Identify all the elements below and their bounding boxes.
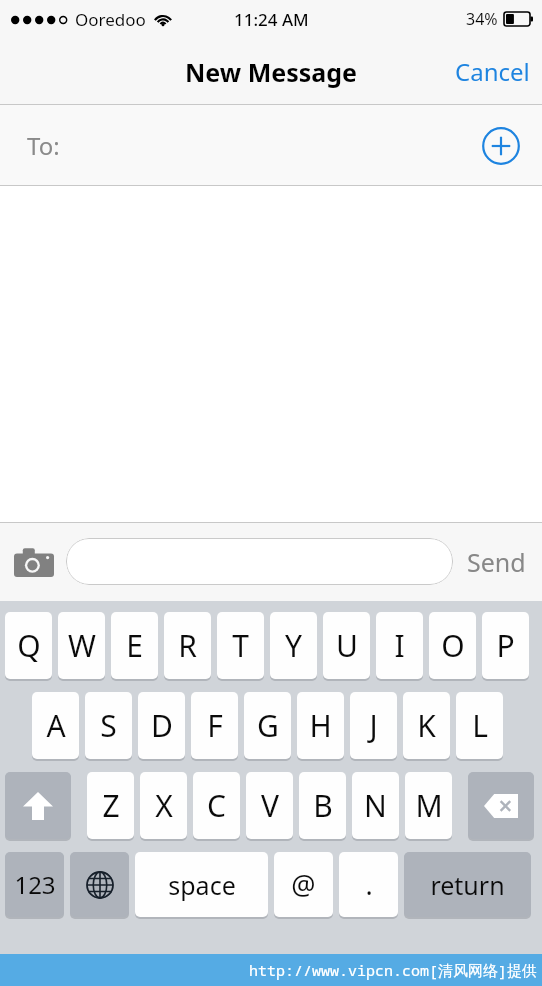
button[interactable]: Z (87, 771, 134, 839)
button[interactable]: V (246, 771, 293, 839)
other: Switch keyboard (70, 851, 129, 917)
staticText: K (417, 705, 436, 746)
button[interactable]: @ (274, 851, 333, 917)
button[interactable]: P (482, 611, 529, 679)
staticText: 34% (466, 8, 498, 30)
button[interactable]: C (193, 771, 240, 839)
staticText: . (365, 866, 373, 903)
button[interactable]: 123 (5, 851, 64, 917)
button[interactable]: K (403, 691, 450, 759)
button[interactable]: A (32, 691, 79, 759)
staticText: V (261, 785, 279, 826)
button[interactable]: Y (270, 611, 317, 679)
button[interactable]: J (350, 691, 397, 759)
staticText: @ (291, 866, 316, 903)
staticText: space (168, 868, 236, 902)
button[interactable]: Send (463, 545, 530, 579)
staticText: Send (467, 545, 526, 579)
staticText: return (430, 868, 505, 902)
staticText: C (207, 785, 226, 826)
staticText: N (364, 785, 387, 826)
staticText: M (415, 785, 443, 826)
button[interactable]: M (405, 771, 452, 839)
staticText: Z (102, 785, 120, 826)
staticText: New Message (185, 55, 357, 89)
button[interactable] (70, 851, 129, 917)
staticText: T (232, 625, 249, 666)
staticText: L (472, 705, 488, 746)
button[interactable]: S (85, 691, 132, 759)
button[interactable]: U (323, 611, 370, 679)
button[interactable]: . (339, 851, 398, 917)
button[interactable]: L (456, 691, 503, 759)
staticText: S (100, 705, 117, 746)
button[interactable]: Camera (12, 544, 56, 580)
staticText: 123 (14, 868, 56, 901)
button[interactable]: W (58, 611, 105, 679)
staticText: 11:24 AM (234, 8, 309, 31)
staticText: H (309, 705, 332, 746)
staticText: Cancel (455, 55, 530, 88)
button[interactable]: Q (5, 611, 52, 679)
staticText: P (496, 625, 515, 666)
button[interactable]: H (297, 691, 344, 759)
staticText: O (441, 625, 465, 666)
staticText: To: (27, 129, 60, 162)
button[interactable]: Add contact (482, 127, 520, 165)
button[interactable]: R (164, 611, 211, 679)
staticText: Ooredoo (75, 8, 146, 31)
staticText: Q (17, 625, 41, 666)
button[interactable]: E (111, 611, 158, 679)
button[interactable]: D (138, 691, 185, 759)
staticText: A (46, 705, 66, 746)
button[interactable] (66, 538, 453, 585)
other: Backspace (468, 771, 534, 839)
staticText: http://www.vipcn.com[清风网络]提供 (249, 960, 538, 980)
button[interactable]: return (404, 851, 531, 917)
staticText: G (257, 705, 279, 746)
button[interactable] (468, 771, 534, 839)
staticText: I (394, 625, 405, 666)
button[interactable]: T (217, 611, 264, 679)
staticText: J (369, 705, 378, 746)
button[interactable]: G (244, 691, 291, 759)
button[interactable]: B (299, 771, 346, 839)
button[interactable]: space (135, 851, 268, 917)
staticText: D (151, 705, 173, 746)
button[interactable]: N (352, 771, 399, 839)
staticText: X (155, 785, 173, 826)
button[interactable]: F (191, 691, 238, 759)
button[interactable]: To: (0, 105, 542, 186)
button[interactable]: Cancel (443, 47, 542, 96)
staticText: F (207, 705, 223, 746)
other: Shift (5, 771, 71, 839)
staticText: Y (285, 625, 302, 666)
button[interactable] (5, 771, 71, 839)
staticText: R (178, 625, 197, 666)
staticText: E (126, 625, 143, 666)
button[interactable]: I (376, 611, 423, 679)
staticText: W (68, 625, 96, 666)
button[interactable]: X (140, 771, 187, 839)
staticText: U (336, 625, 358, 666)
staticText: B (313, 785, 333, 826)
button[interactable]: O (429, 611, 476, 679)
